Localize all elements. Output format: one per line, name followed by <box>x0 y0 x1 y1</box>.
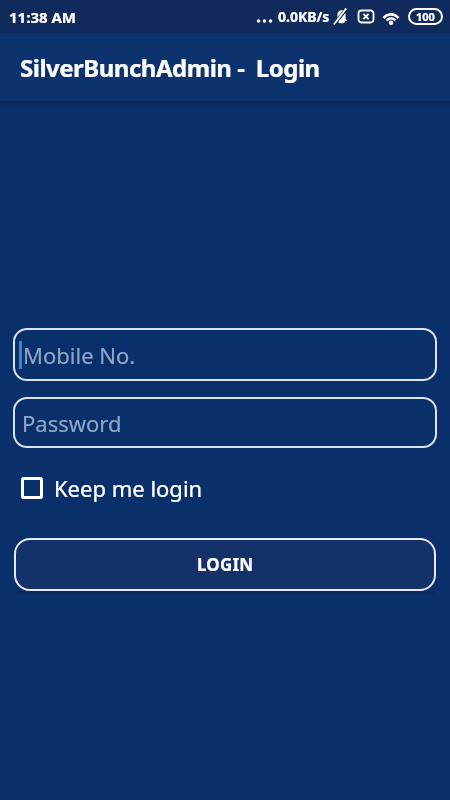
staticText: Password <box>22 408 122 438</box>
staticText: Mobile No. <box>23 340 136 370</box>
staticText: 100 <box>416 9 435 24</box>
button[interactable]: Password <box>13 397 437 448</box>
staticText: LOGIN <box>197 553 254 576</box>
staticText: 11:38 AM <box>9 7 76 27</box>
staticText: Keep me login <box>54 473 203 503</box>
staticText: 0.0KB/s <box>278 7 330 26</box>
staticText: SilverBunchAdmin - Login <box>20 51 320 84</box>
button[interactable]: LOGIN <box>14 538 436 591</box>
button[interactable]: Mobile No. <box>13 328 437 381</box>
button[interactable]: Keep me login <box>21 473 203 503</box>
